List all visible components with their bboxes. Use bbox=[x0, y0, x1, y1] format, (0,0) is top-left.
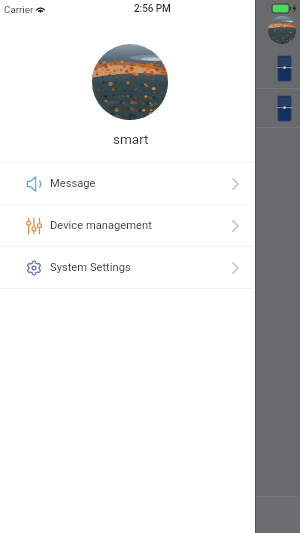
button[interactable]: Profile photo bbox=[92, 44, 168, 120]
button[interactable]: Device management bbox=[0, 205, 254, 246]
staticText: 2:56 PM bbox=[134, 3, 171, 15]
staticText: Device management bbox=[50, 219, 152, 232]
staticText: Carrier bbox=[4, 4, 34, 15]
staticText: smart bbox=[113, 131, 149, 145]
staticText: Message bbox=[50, 177, 96, 190]
button[interactable]: System Settings bbox=[0, 247, 254, 288]
staticText: System Settings bbox=[50, 261, 131, 274]
button[interactable]: Message bbox=[0, 163, 254, 204]
